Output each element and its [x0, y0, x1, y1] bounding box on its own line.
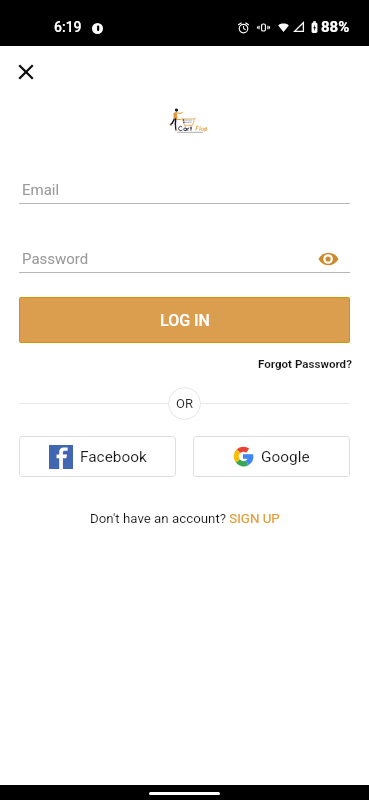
staticText: Password [22, 250, 89, 268]
staticText: LOG IN [160, 311, 210, 330]
button[interactable]: LOG IN [20, 298, 349, 342]
staticText: Forgot Password? [258, 357, 352, 371]
staticText: 88% [321, 18, 350, 36]
staticText: Don't have an account? SIGN UP [90, 511, 280, 527]
button[interactable]: Password [19, 245, 350, 273]
button[interactable]: Email [19, 176, 350, 204]
staticText: Facebook [80, 448, 147, 466]
button[interactable]: Facebook [19, 436, 176, 477]
staticText: OR [176, 396, 193, 411]
button[interactable]: Show password [314, 245, 342, 273]
button[interactable]: Google [193, 436, 350, 477]
staticText: Google [261, 448, 310, 466]
button[interactable]: Forgot Password? [254, 354, 356, 374]
staticText: Email [22, 181, 60, 199]
staticText: 6:19 [54, 19, 82, 35]
button[interactable]: Close [13, 59, 39, 85]
button[interactable]: Don't have an account? SIGN UP [88, 509, 282, 529]
